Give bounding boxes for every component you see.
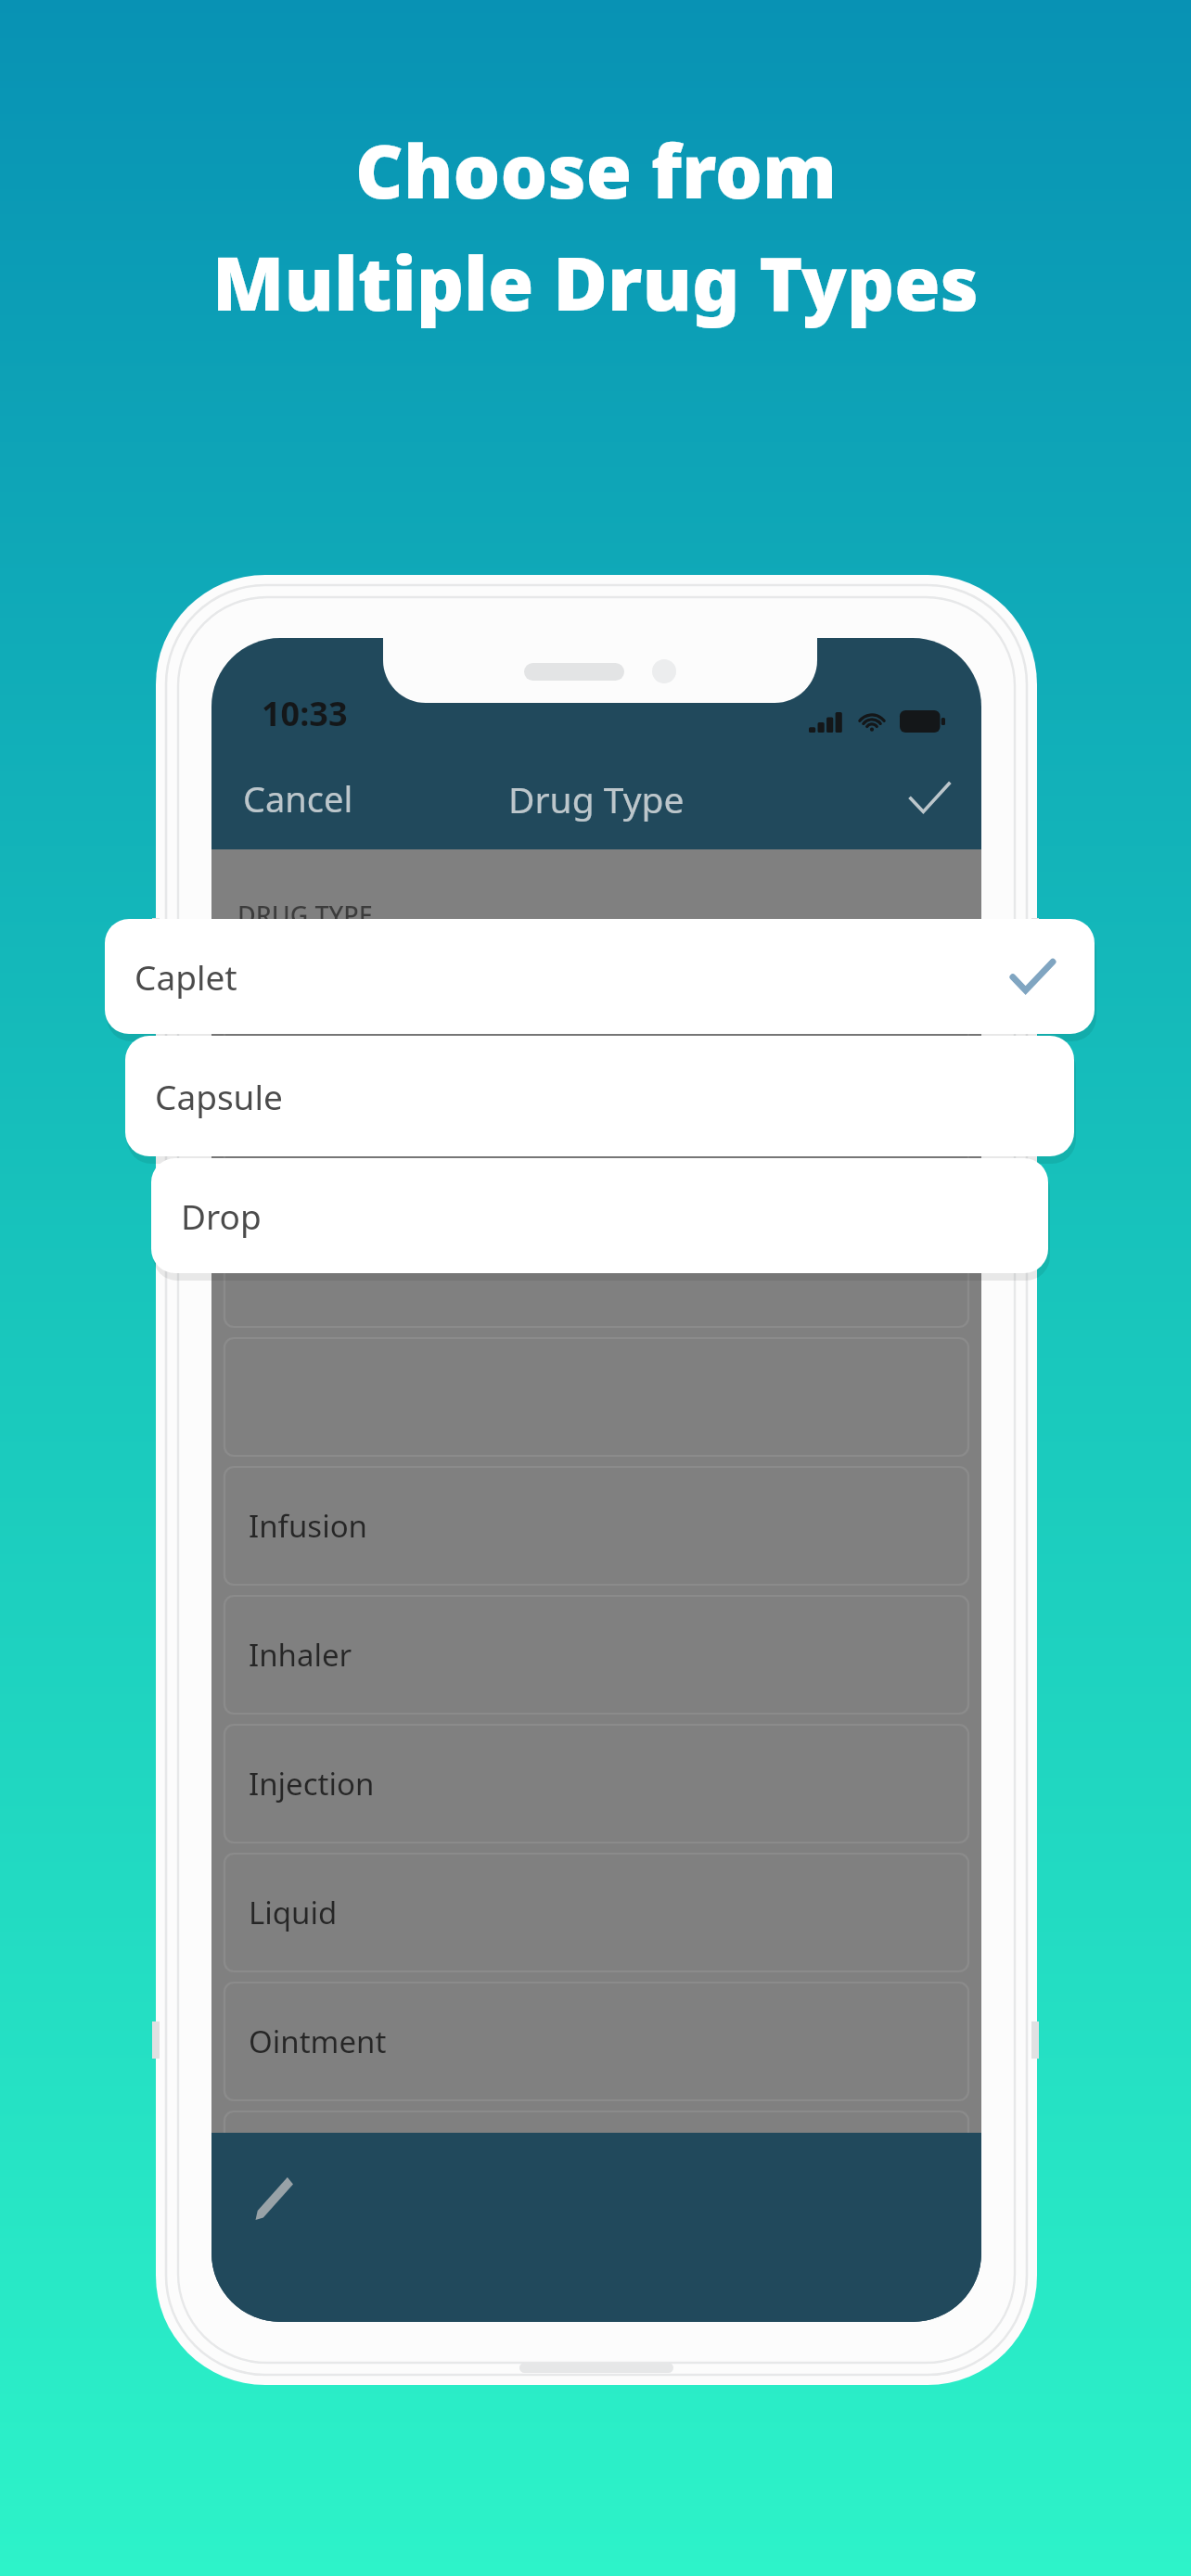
button[interactable]: Infusion (224, 1461, 968, 1590)
button[interactable]: Drop (151, 1158, 1048, 1273)
staticText: Infusion (249, 1505, 368, 1547)
button[interactable]: Inhaler (224, 1590, 968, 1719)
button[interactable] (224, 1204, 968, 1333)
staticText: Drop (181, 1192, 262, 1239)
button[interactable]: Done (877, 765, 981, 832)
button[interactable]: Caplet (105, 919, 1095, 1034)
button[interactable]: Ointment (224, 1977, 968, 2106)
button[interactable]: Capsule (125, 1036, 1074, 1156)
button[interactable]: Edit (239, 2161, 306, 2233)
button[interactable]: Patch (224, 2106, 968, 2229)
staticText: 10:33 (262, 691, 348, 736)
button[interactable]: Injection (224, 1719, 968, 1848)
staticText: Drug Type (508, 774, 685, 823)
staticText: Injection (249, 1763, 375, 1804)
staticText: Patch (249, 2147, 329, 2188)
staticText: Capsule (155, 1073, 283, 1119)
button[interactable] (224, 1075, 968, 1204)
button[interactable]: Liquid (224, 1848, 968, 1977)
staticText: Inhaler (249, 1634, 352, 1676)
staticText: Ointment (249, 2021, 387, 2062)
staticText: DRUG TYPE (237, 898, 373, 932)
staticText: Choose from (355, 119, 837, 220)
button[interactable] (224, 946, 968, 1075)
button[interactable]: Cancel (211, 758, 385, 839)
staticText: Caplet (134, 953, 237, 1000)
staticText: Multiple Drug Types (212, 231, 979, 332)
staticText: Cancel (243, 774, 353, 823)
staticText: Liquid (249, 1892, 338, 1933)
